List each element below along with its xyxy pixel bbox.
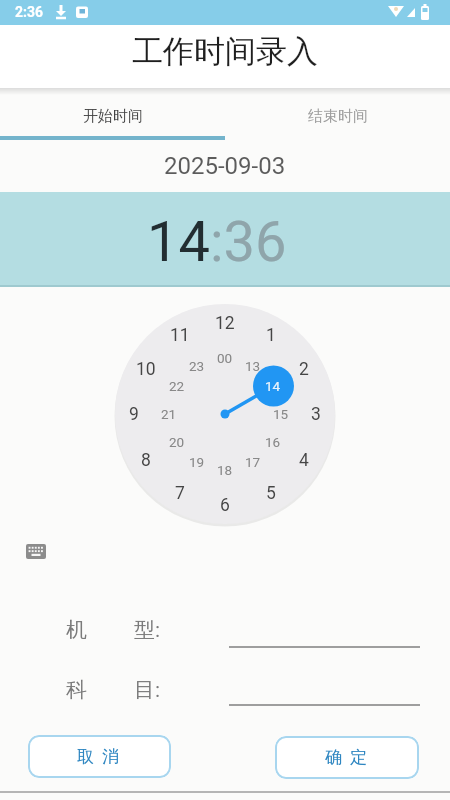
staticText: 型: — [134, 617, 161, 643]
staticText: 机 — [66, 617, 87, 643]
staticText: 18 — [217, 462, 233, 478]
staticText: 目: — [134, 677, 161, 703]
button[interactable]: 确 定 — [275, 736, 419, 779]
staticText: 14 — [147, 209, 210, 275]
staticText: 8 — [141, 450, 151, 471]
staticText: 7 — [175, 483, 185, 504]
staticText: 17 — [245, 454, 261, 470]
staticText: 9 — [129, 404, 139, 425]
button[interactable]: 开始时间 — [0, 96, 225, 136]
staticText: 00 — [217, 350, 233, 366]
staticText: :36 — [210, 209, 287, 275]
staticText: 11 — [170, 325, 190, 346]
staticText: 取 消 — [77, 746, 122, 767]
staticText: 1 — [266, 325, 276, 346]
staticText: 5 — [266, 483, 276, 504]
button[interactable]: 结束时间 — [225, 96, 450, 136]
staticText: 2:36 — [15, 4, 44, 20]
staticText: 12 — [215, 313, 235, 334]
button[interactable] — [26, 544, 46, 559]
staticText: 16 — [265, 434, 281, 450]
button[interactable]: 取 消 — [28, 735, 171, 778]
staticText: 结束时间 — [308, 107, 368, 126]
staticText: 6 — [220, 495, 230, 516]
staticText: 20 — [169, 434, 185, 450]
staticText: 科 — [66, 677, 87, 703]
staticText: 工作时间录入 — [132, 32, 318, 71]
staticText: 10 — [136, 359, 156, 380]
staticText: 15 — [273, 406, 289, 422]
staticText: 21 — [161, 406, 177, 422]
staticText: 23 — [189, 358, 205, 374]
staticText: 2 — [299, 359, 309, 380]
staticText: 14 — [265, 378, 281, 394]
staticText: 19 — [189, 454, 205, 470]
staticText: 确 定 — [325, 747, 370, 768]
staticText: 3 — [311, 404, 321, 425]
staticText: 13 — [245, 358, 261, 374]
staticText: 22 — [169, 378, 185, 394]
staticText: 开始时间 — [83, 107, 143, 126]
staticText: 4 — [299, 450, 309, 471]
staticText: 2025-09-03 — [164, 152, 286, 180]
